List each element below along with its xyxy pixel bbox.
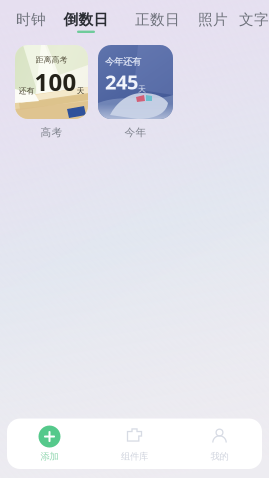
staticText: 组件库 xyxy=(121,450,148,462)
staticText: 添加 xyxy=(40,450,58,462)
button[interactable]: 时钟 xyxy=(19,11,43,33)
staticText: 我的 xyxy=(210,450,228,462)
staticText: 高考 xyxy=(40,126,62,139)
button[interactable]: 我的 xyxy=(177,425,262,462)
staticText: 还有 xyxy=(18,86,34,96)
button[interactable]: 组件库 xyxy=(92,425,177,462)
button[interactable]: 文字 xyxy=(240,11,268,33)
staticText: 天 xyxy=(76,86,84,96)
staticText: 245 xyxy=(105,68,138,95)
staticText: 照片 xyxy=(198,11,228,29)
button[interactable]: 倒数日 xyxy=(43,11,129,33)
button[interactable]: 正数日 xyxy=(129,11,186,33)
staticText: 时钟 xyxy=(16,11,46,29)
staticText: 天 xyxy=(138,84,146,94)
staticText: 今年还有 xyxy=(105,56,141,67)
staticText: 100 xyxy=(34,66,76,98)
button[interactable]: 距离高考 xyxy=(15,45,88,139)
staticText: 距离高考 xyxy=(35,55,67,65)
button[interactable]: 今年还有 xyxy=(98,45,173,139)
button[interactable]: 添加 xyxy=(7,425,92,462)
staticText: 正数日 xyxy=(135,11,180,29)
staticText: 今年 xyxy=(124,126,146,139)
button[interactable]: 照片 xyxy=(186,11,240,33)
staticText: 倒数日 xyxy=(63,11,108,29)
staticText: 文字 xyxy=(239,11,269,29)
